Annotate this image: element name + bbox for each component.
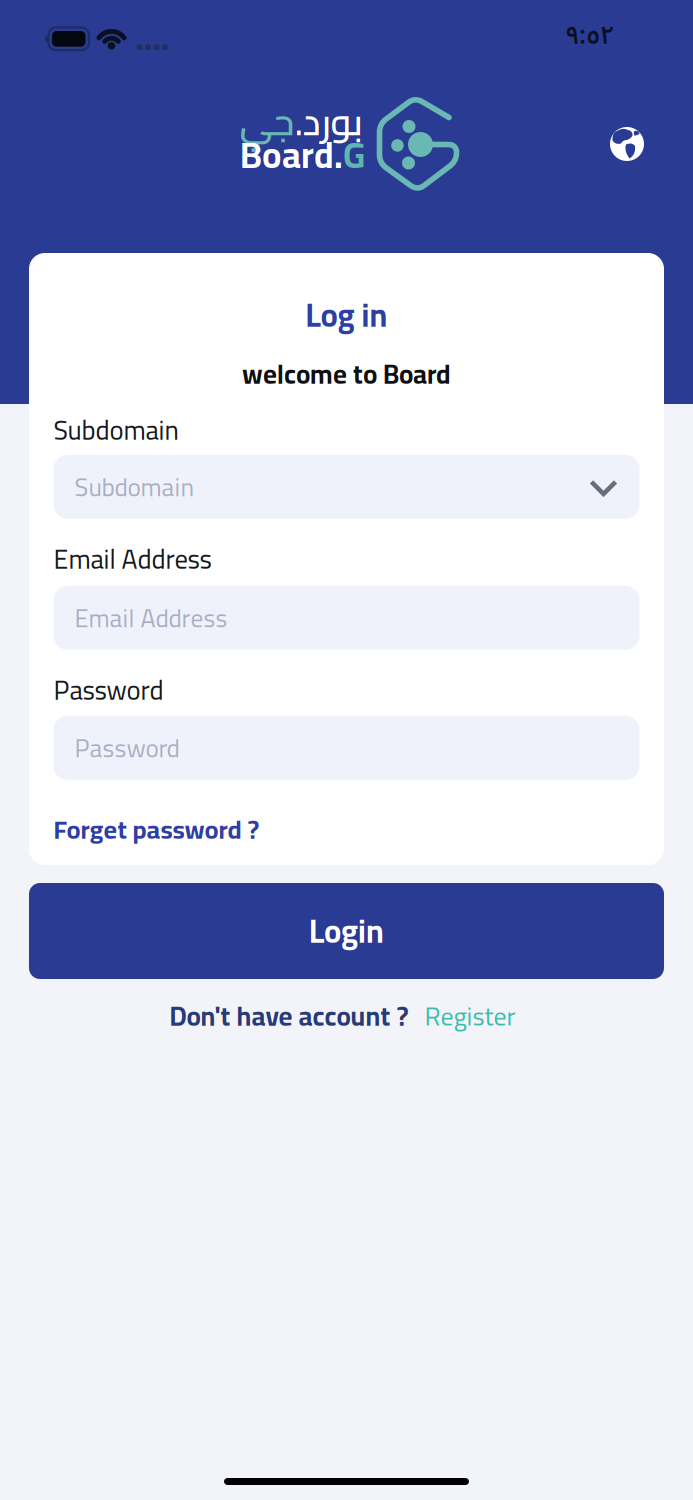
staticText: ٩:٥٢	[565, 9, 614, 62]
staticText: جي	[239, 86, 294, 156]
staticText: بورد.	[294, 86, 362, 156]
button[interactable]: Subdomain	[53, 455, 639, 519]
staticText: Password	[74, 724, 179, 772]
staticText: Subdomain	[74, 463, 194, 511]
button[interactable]: Change language	[610, 127, 644, 161]
staticText: Board.	[240, 121, 343, 188]
staticText: G	[343, 121, 365, 188]
staticText: Password	[53, 665, 163, 715]
staticText: welcome to Board	[242, 349, 451, 399]
staticText: Email Address	[74, 594, 227, 642]
button[interactable]: Register	[424, 992, 515, 1040]
button[interactable]: Forget password ?	[53, 805, 259, 854]
staticText: Register	[424, 992, 515, 1040]
staticText: Log in	[305, 285, 387, 345]
staticText: Email Address	[53, 534, 211, 584]
staticText: Don't have account ?	[169, 991, 408, 1041]
button[interactable]: Email Address	[53, 586, 639, 650]
button[interactable]: Login	[29, 883, 664, 979]
button[interactable]: Password	[53, 716, 639, 780]
staticText: Forget password ?	[53, 805, 259, 854]
staticText: Subdomain	[53, 405, 178, 455]
staticText: Login	[309, 901, 384, 961]
